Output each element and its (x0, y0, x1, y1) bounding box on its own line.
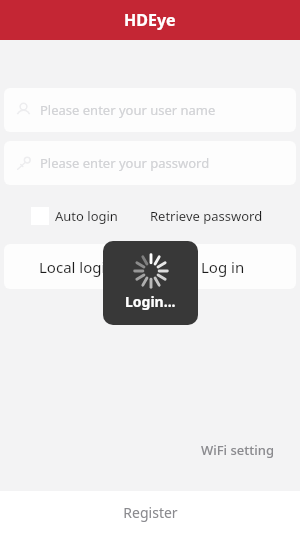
staticText: Login... (125, 292, 176, 311)
button[interactable]: Please enter your password (4, 141, 296, 185)
staticText: Auto login (55, 207, 118, 225)
staticText: Register (123, 503, 178, 522)
staticText: Local login (39, 257, 115, 277)
staticText: HDEye (124, 9, 176, 31)
staticText: Retrieve password (150, 207, 263, 225)
staticText: Log in (201, 257, 245, 277)
button[interactable]: Register (0, 491, 300, 533)
button[interactable]: Log in (150, 244, 296, 289)
button[interactable]: Retrieve password (144, 201, 269, 231)
button[interactable]: WiFi setting (195, 433, 280, 467)
staticText: Please enter your password (40, 154, 210, 172)
button[interactable]: Please enter your user name (4, 88, 296, 132)
button[interactable]: Local login (4, 244, 150, 289)
button[interactable]: Auto login (0, 203, 124, 229)
staticText: WiFi setting (201, 441, 274, 459)
staticText: Please enter your user name (40, 101, 216, 119)
